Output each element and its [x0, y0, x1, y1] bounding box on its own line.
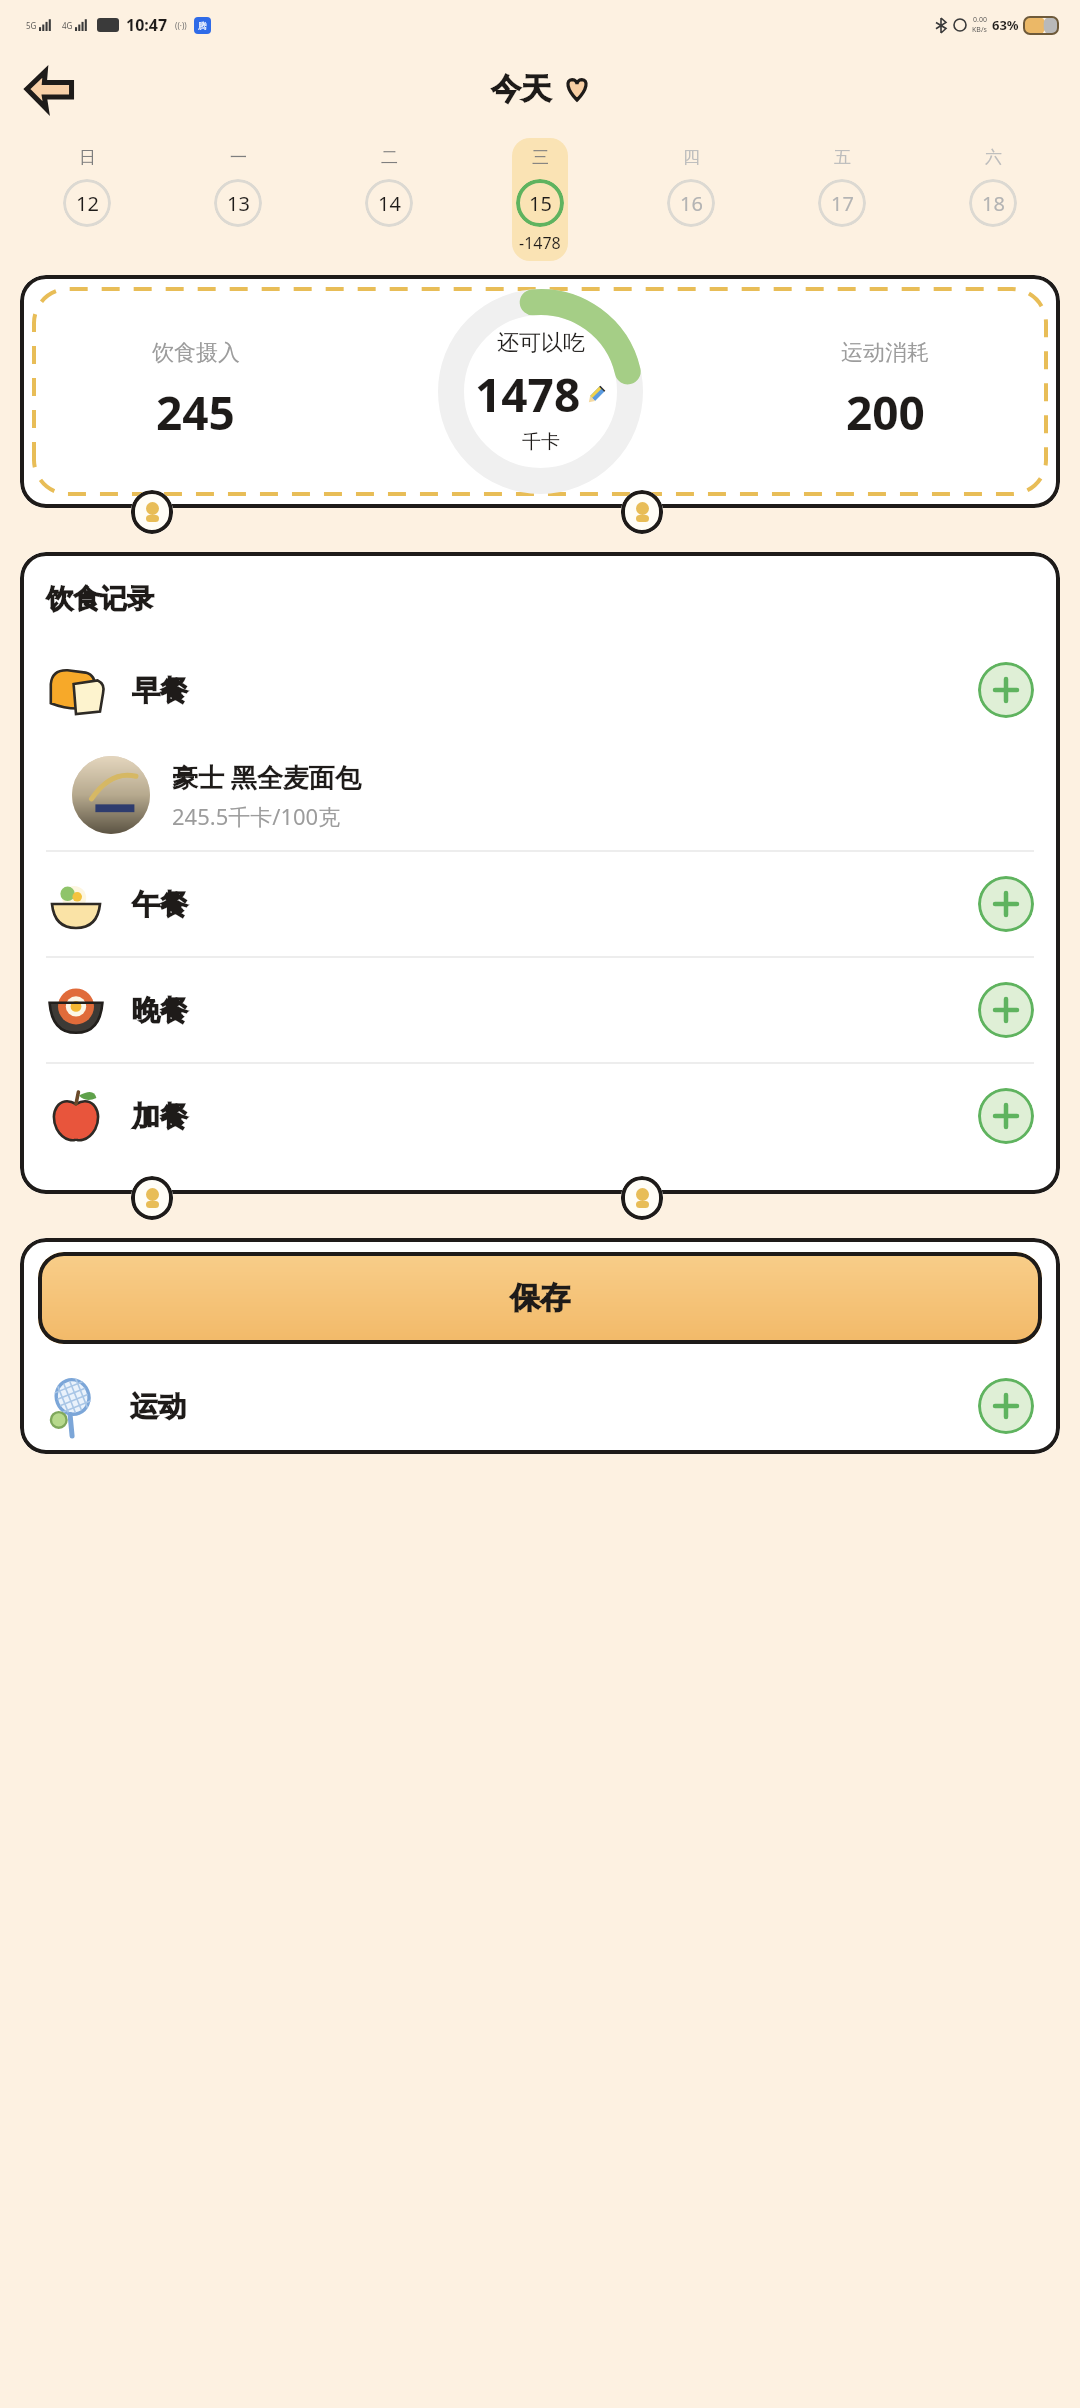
staticText: 运动: [130, 1389, 186, 1424]
staticText: -1478: [519, 232, 561, 254]
staticText: 加餐: [132, 1099, 188, 1134]
button[interactable]: 返回: [18, 58, 80, 120]
staticText: 245.5千卡/100克: [172, 801, 341, 831]
staticText: 千卡: [522, 430, 560, 454]
staticText: KB/s: [972, 25, 987, 35]
staticText: 12: [76, 190, 99, 217]
staticText: 17: [831, 190, 854, 217]
staticText: 五: [834, 147, 851, 168]
button[interactable]: 豪士 黑全麦面包: [72, 756, 1034, 834]
staticText: 饮食记录: [46, 582, 154, 616]
button[interactable]: 保存: [38, 1252, 1042, 1344]
staticText: 1478: [475, 363, 581, 426]
staticText: 13: [227, 190, 250, 217]
staticText: 日: [79, 147, 96, 168]
button[interactable]: 一: [210, 138, 266, 234]
staticText: 午餐: [132, 887, 188, 922]
button[interactable]: 五: [814, 138, 870, 234]
staticText: 腾: [198, 20, 207, 31]
button[interactable]: 晚餐: [46, 958, 1034, 1062]
staticText: 200: [846, 381, 925, 444]
button[interactable]: 加餐: [46, 1064, 1034, 1168]
staticText: 豪士 黑全麦面包: [172, 759, 361, 795]
button[interactable]: 添加早餐: [978, 662, 1034, 718]
button[interactable]: 二: [361, 138, 417, 234]
button[interactable]: 添加午餐: [978, 876, 1034, 932]
staticText: 14: [378, 190, 401, 217]
button[interactable]: 添加运动: [978, 1378, 1034, 1434]
staticText: 六: [985, 147, 1002, 168]
button[interactable]: 运动: [46, 1358, 1034, 1454]
staticText: 晚餐: [132, 993, 188, 1028]
staticText: 二: [381, 147, 398, 168]
button[interactable]: 四: [663, 138, 719, 234]
staticText: 16: [680, 190, 703, 217]
staticText: 三: [532, 147, 549, 168]
staticText: 今天: [491, 70, 551, 108]
staticText: 63%: [992, 16, 1019, 34]
staticText: 4G: [62, 20, 73, 31]
staticText: 10:47: [126, 14, 168, 36]
staticText: ((·)): [175, 20, 187, 31]
staticText: 245: [156, 381, 235, 444]
button[interactable]: 六: [965, 138, 1021, 234]
button[interactable]: 午餐: [46, 852, 1034, 956]
staticText: 还可以吃: [497, 329, 585, 357]
staticText: 四: [683, 147, 700, 168]
button[interactable]: 日: [59, 138, 115, 234]
staticText: 5G: [26, 20, 37, 31]
button[interactable]: 三: [512, 138, 568, 261]
button[interactable]: 今天: [491, 70, 589, 108]
staticText: 饮食摄入: [152, 339, 240, 367]
button[interactable]: 早餐: [46, 638, 1034, 742]
button[interactable]: 饮食摄入: [20, 275, 1060, 508]
staticText: 18: [982, 190, 1005, 217]
button[interactable]: 添加加餐: [978, 1088, 1034, 1144]
button[interactable]: 添加晚餐: [978, 982, 1034, 1038]
staticText: 15: [529, 190, 552, 217]
staticText: 保存: [510, 1279, 570, 1317]
staticText: 早餐: [132, 673, 188, 708]
staticText: 运动消耗: [841, 339, 929, 367]
staticText: 一: [230, 147, 247, 168]
staticText: 0.00: [973, 15, 987, 25]
